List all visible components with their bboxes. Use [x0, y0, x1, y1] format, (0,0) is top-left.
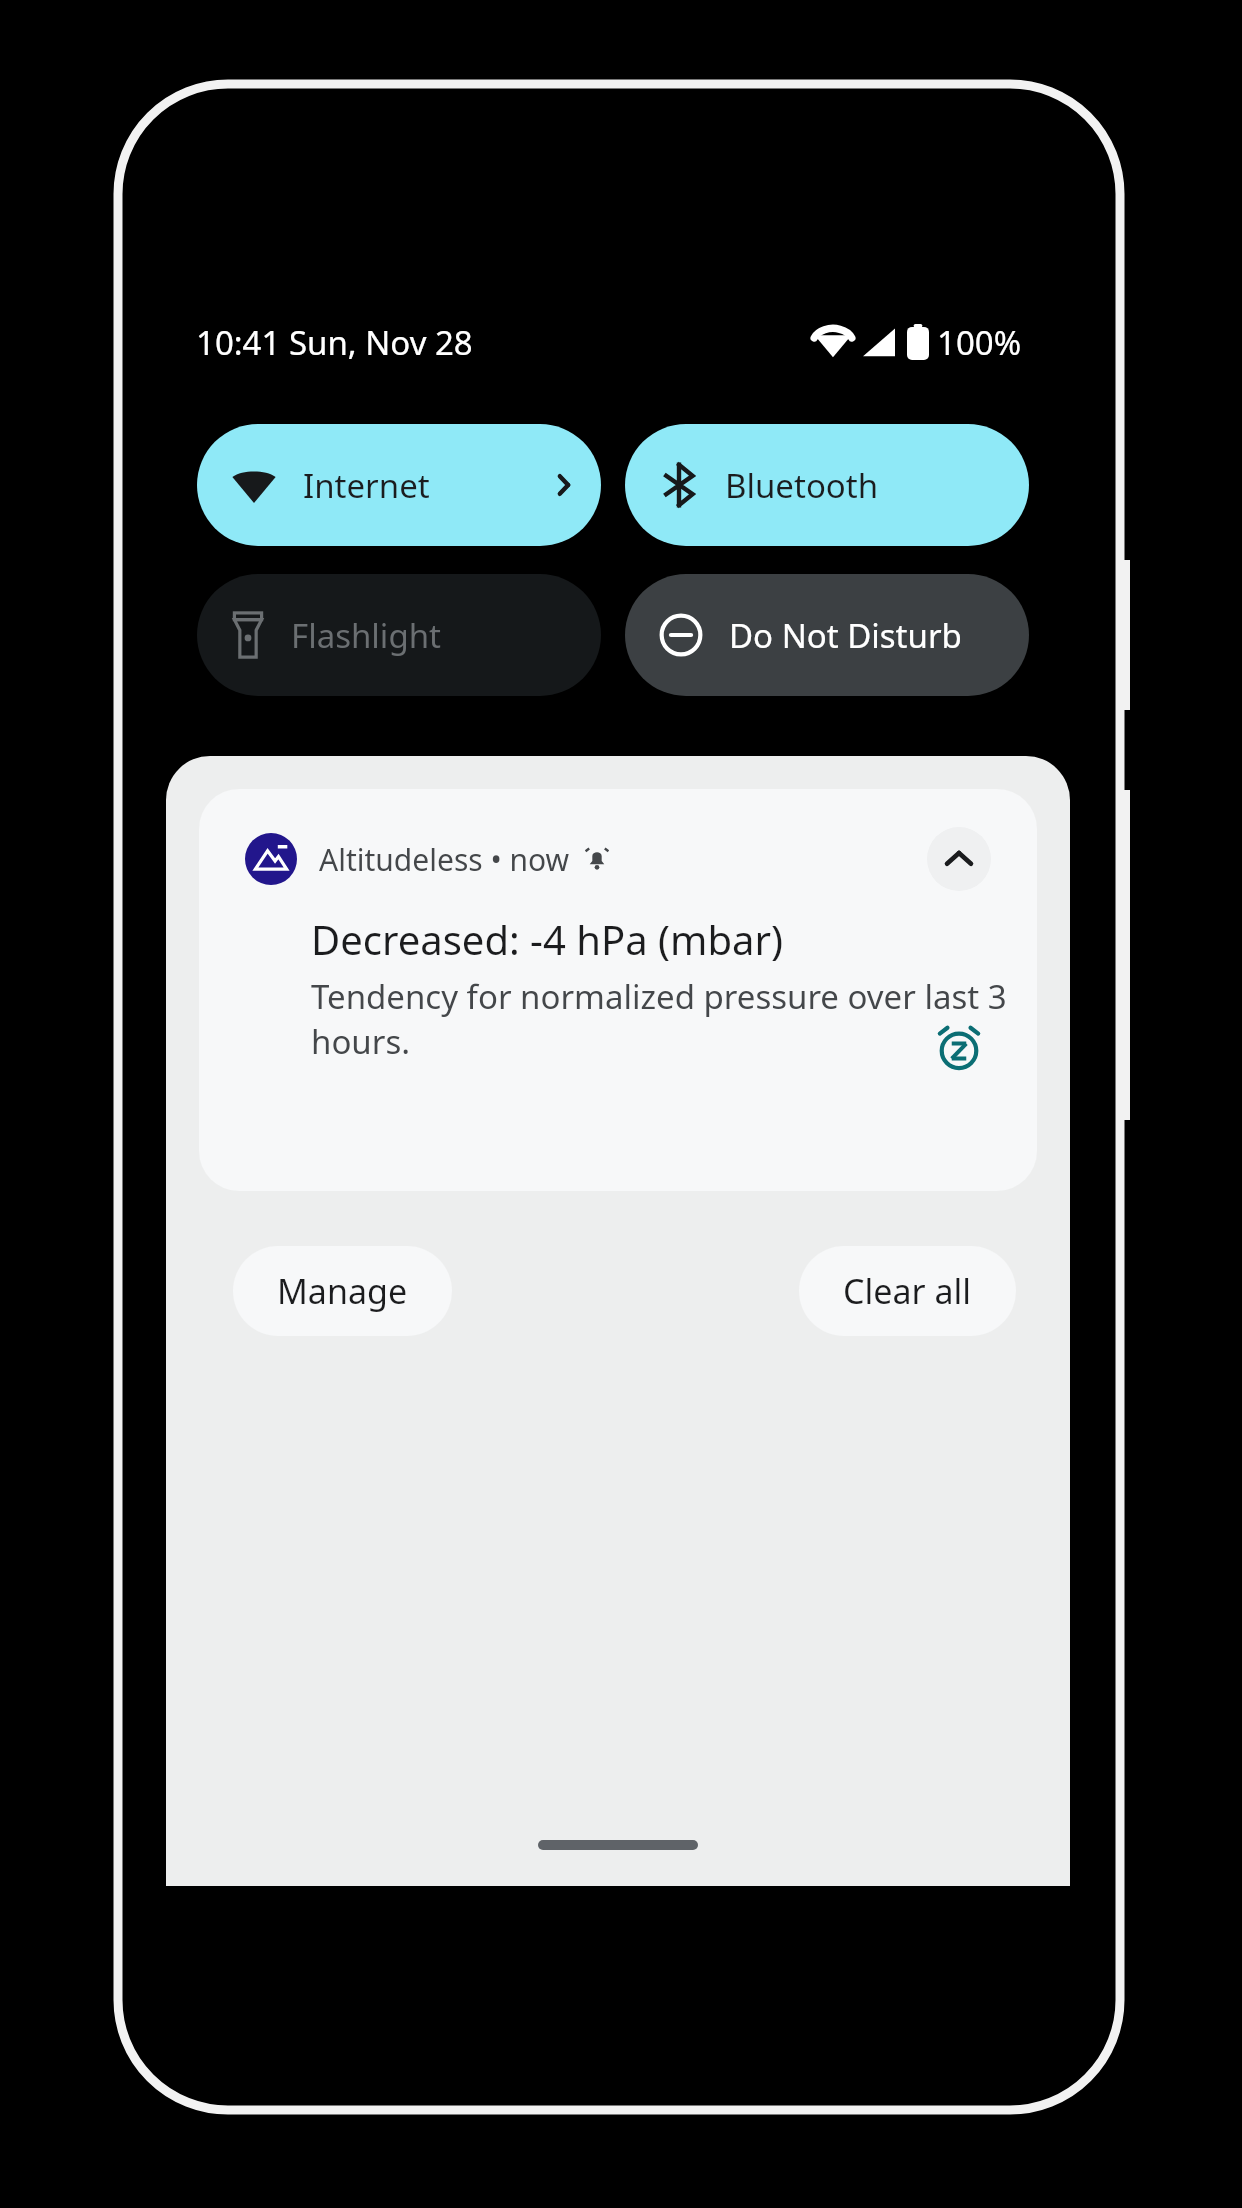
staticText: Bluetooth: [725, 463, 879, 508]
button[interactable]: Do Not Disturb: [625, 574, 1029, 696]
staticText: Tendency for normalized pressure over la…: [311, 974, 1007, 1063]
staticText: Flashlight: [291, 613, 441, 658]
button[interactable]: Altitudeless • now: [199, 789, 1037, 1191]
staticText: 100%: [937, 320, 1022, 365]
button[interactable]: Manage: [233, 1246, 452, 1336]
staticText: 10:41 Sun, Nov 28: [196, 320, 473, 365]
staticText: Manage: [277, 1268, 408, 1314]
staticText: Do Not Disturb: [729, 613, 962, 658]
button[interactable]: Flashlight: [197, 574, 601, 696]
button[interactable]: Snooze: [923, 1011, 995, 1083]
staticText: Altitudeless • now: [319, 839, 570, 880]
staticText: Clear all: [843, 1268, 972, 1314]
staticText: Internet: [303, 463, 430, 508]
button[interactable]: Clear all: [799, 1246, 1016, 1336]
staticText: Decreased: -4 hPa (mbar): [311, 912, 783, 966]
button[interactable]: Collapse notification: [927, 827, 991, 891]
button[interactable]: Bluetooth: [625, 424, 1029, 546]
button[interactable]: Internet: [197, 424, 601, 546]
